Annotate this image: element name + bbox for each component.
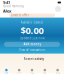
staticText: View all transactions <box>19 48 45 52</box>
staticText: Available balance <box>20 21 43 24</box>
staticText: Good morning <box>3 4 24 8</box>
staticText: Pay <box>30 72 33 74</box>
button[interactable]: Pay <box>26 66 38 75</box>
staticText: Home <box>4 72 8 74</box>
button[interactable]: Cards <box>13 66 26 75</box>
staticText: More <box>56 72 60 74</box>
staticText: Updated just now <box>19 36 44 40</box>
button[interactable]: Profile <box>55 6 61 12</box>
staticText: Stats <box>43 72 46 74</box>
button[interactable]: Home <box>0 66 13 75</box>
staticText: 9:41 <box>3 0 10 5</box>
button[interactable]: Add money <box>4 42 60 47</box>
staticText: Cards <box>17 72 22 74</box>
staticText: Add money <box>23 42 40 46</box>
button[interactable]: More <box>51 66 64 75</box>
staticText: Alex <box>3 8 11 14</box>
button[interactable]: Stats <box>38 66 51 75</box>
staticText: Recent activity <box>23 57 43 61</box>
staticText: $0.00 <box>20 24 43 36</box>
staticText: Limited offer <box>11 13 29 17</box>
